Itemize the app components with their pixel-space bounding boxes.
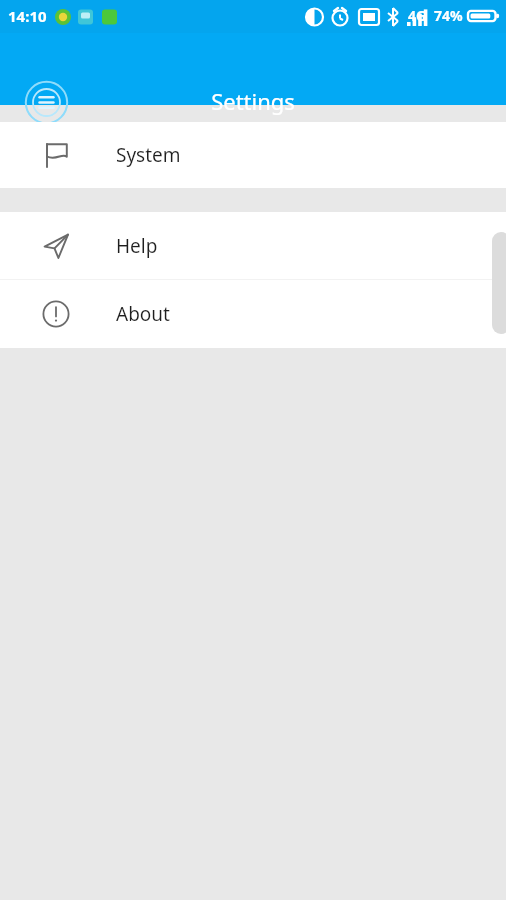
staticText: 4G: [408, 6, 427, 25]
button[interactable]: System: [0, 122, 506, 188]
staticText: About: [116, 301, 170, 327]
staticText: 14:10: [8, 6, 47, 26]
staticText: System: [116, 142, 181, 168]
button[interactable]: Help: [0, 212, 506, 279]
staticText: Help: [116, 233, 158, 259]
button[interactable]: About: [0, 280, 506, 348]
staticText: 74%: [434, 6, 463, 25]
staticText: Settings: [0, 86, 506, 116]
button[interactable]: Open navigation menu: [24, 80, 69, 125]
